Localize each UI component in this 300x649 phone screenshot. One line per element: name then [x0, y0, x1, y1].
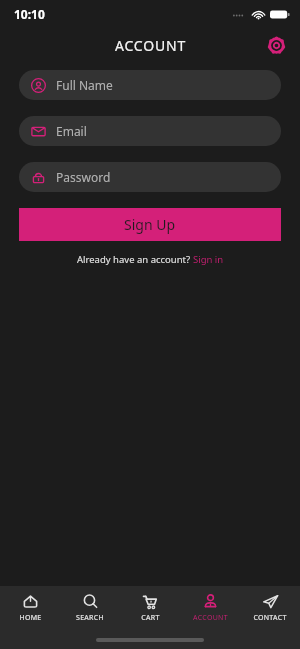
button[interactable]: Sign Up: [19, 208, 281, 241]
staticText: Already have an account?: [77, 253, 193, 266]
button[interactable]: Full Name: [19, 70, 281, 100]
staticText: 10:10: [14, 6, 45, 22]
staticText: Sign Up: [124, 215, 176, 234]
staticText: CONTACT: [253, 613, 287, 623]
button[interactable]: SEARCH: [60, 593, 120, 628]
button[interactable]: Email: [19, 116, 281, 146]
button[interactable]: CONTACT: [240, 593, 300, 628]
staticText: Password: [56, 169, 111, 185]
button[interactable]: HOME: [0, 593, 60, 628]
staticText: ACCOUNT: [193, 613, 228, 623]
button[interactable]: ACCOUNT: [180, 593, 240, 628]
staticText: Sign in: [193, 253, 224, 266]
staticText: CART: [141, 613, 160, 623]
button[interactable]: Settings: [260, 29, 292, 61]
button[interactable]: Password: [19, 162, 281, 192]
staticText: Full Name: [56, 77, 113, 93]
staticText: ACCOUNT: [115, 36, 186, 55]
staticText: SEARCH: [76, 613, 104, 623]
staticText: Email: [56, 123, 87, 139]
button[interactable]: Sign in: [193, 253, 224, 266]
staticText: HOME: [19, 613, 42, 623]
button[interactable]: CART: [120, 593, 180, 628]
